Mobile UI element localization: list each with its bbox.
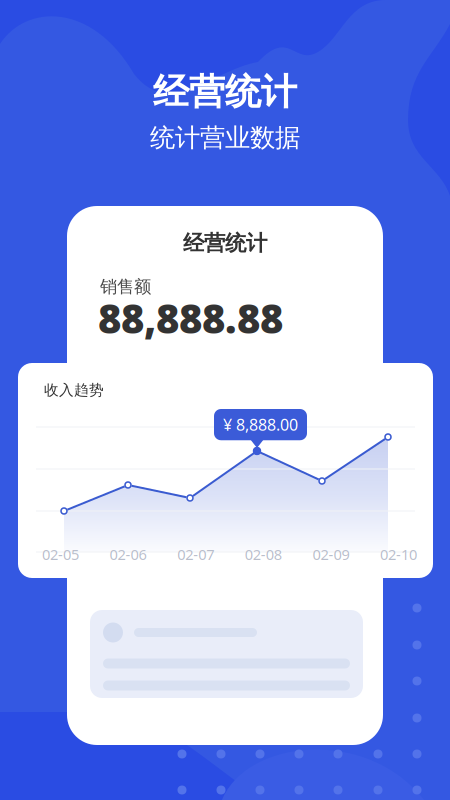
staticText: 02-06 — [110, 544, 147, 564]
staticText: 经营统计 — [183, 230, 267, 256]
staticText: 02-07 — [177, 544, 214, 564]
staticText: 02-09 — [312, 544, 349, 564]
staticText: 收入趋势 — [44, 381, 104, 399]
staticText: 销售额 — [100, 276, 151, 297]
staticText: 经营统计 — [153, 70, 297, 114]
staticText: 02-10 — [380, 544, 417, 564]
staticText: 88,888.88 — [98, 291, 283, 345]
staticText: 02-08 — [245, 544, 282, 564]
staticText: 02-05 — [42, 544, 79, 564]
staticText: ¥ 8,888.00 — [223, 414, 298, 435]
staticText: 统计营业数据 — [150, 122, 300, 153]
